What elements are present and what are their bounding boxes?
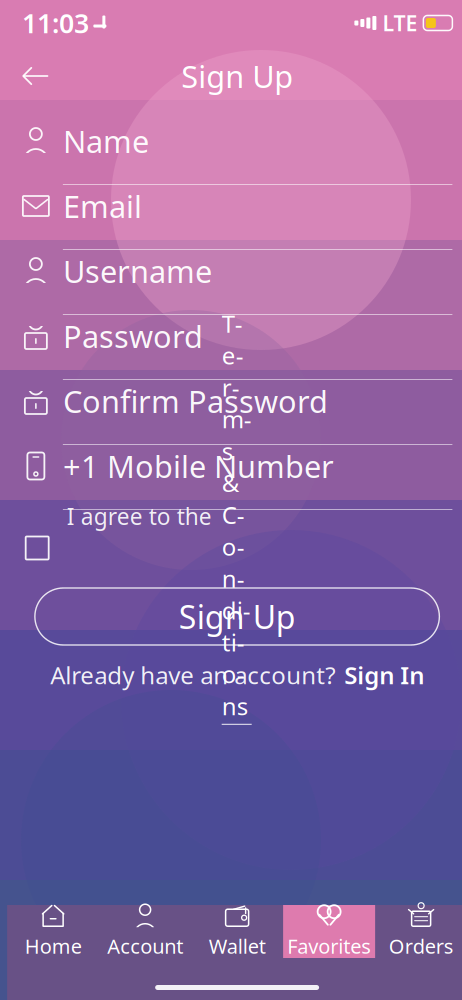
staticText: Favorites [287, 933, 371, 959]
staticText: Account [107, 933, 183, 959]
staticText: Wallet [209, 933, 266, 959]
staticText: 11:03 [22, 5, 89, 41]
staticText: I agree to the [67, 501, 212, 531]
staticText: Email [63, 186, 142, 226]
button[interactable]: Back [12, 54, 56, 98]
button[interactable]: Name [0, 120, 462, 185]
button[interactable]: +1 Mobile Number [0, 445, 462, 510]
button[interactable]: Email [0, 185, 462, 250]
staticText: Confirm Password [63, 381, 328, 421]
staticText: +1 Mobile Number [63, 446, 334, 486]
button[interactable]: Home [7, 905, 99, 958]
button[interactable]: Sign Up [35, 588, 439, 645]
staticText: LTE [382, 9, 417, 37]
staticText: Username [63, 251, 212, 291]
button[interactable]: Account [99, 905, 191, 958]
staticText: Sign Up [179, 595, 296, 638]
staticText: Home [25, 933, 82, 959]
staticText: Orders [389, 933, 454, 959]
button[interactable]: Confirm Password [0, 380, 462, 445]
button[interactable]: Password [0, 315, 462, 380]
button[interactable]: Already have an account? [50, 655, 424, 695]
button[interactable]: Username [0, 250, 462, 315]
staticText: Already have an account? [50, 659, 335, 691]
button[interactable]: Favorites [283, 905, 375, 958]
staticText: Terms & Conditions [222, 307, 252, 722]
button[interactable]: Orders [375, 905, 462, 958]
staticText: Sign In [344, 659, 424, 691]
staticText: Password [63, 316, 203, 356]
button[interactable]: I agree to the [0, 526, 462, 570]
button[interactable]: Wallet [191, 905, 283, 958]
staticText: Name [63, 121, 149, 161]
staticText: Sign Up [181, 56, 293, 96]
